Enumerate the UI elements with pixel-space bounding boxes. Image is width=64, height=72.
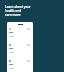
staticText: Learn about your health and earn more xyxy=(5,5,33,17)
button[interactable]: Heart xyxy=(9,28,30,37)
button[interactable]: Sleep xyxy=(9,60,30,69)
button[interactable]: Activity xyxy=(9,44,30,53)
